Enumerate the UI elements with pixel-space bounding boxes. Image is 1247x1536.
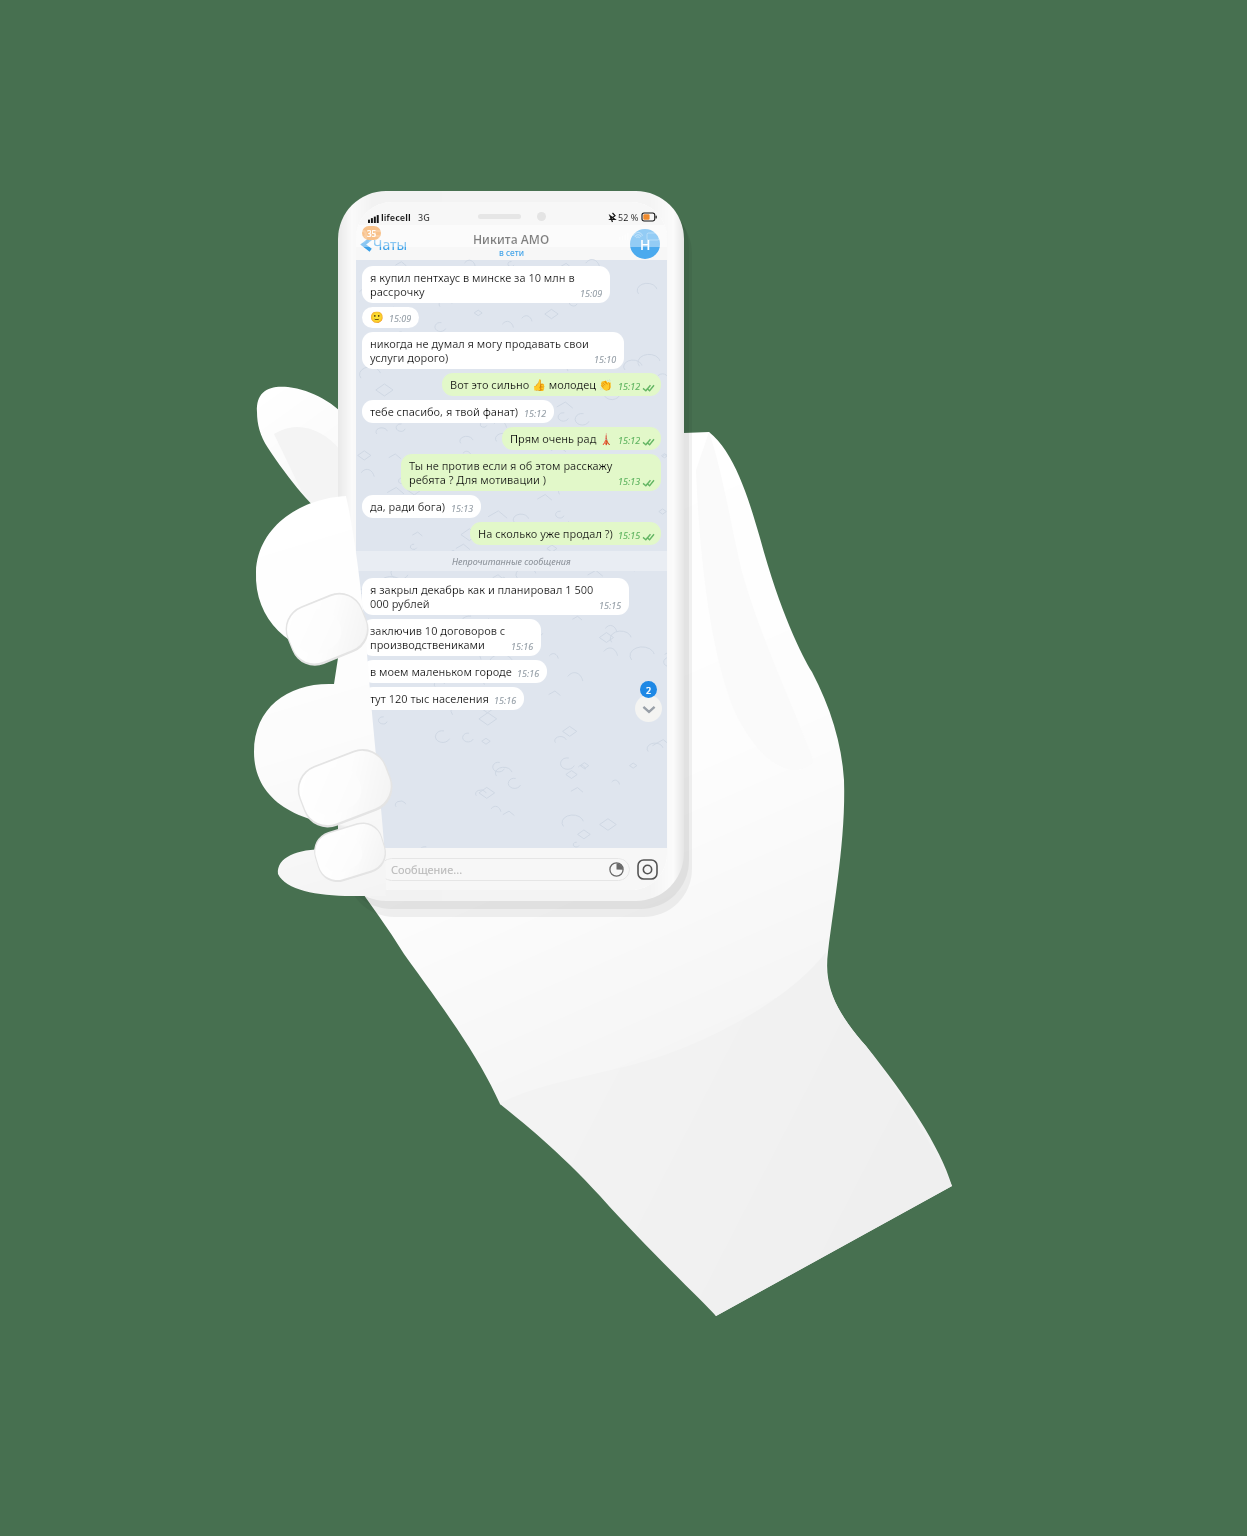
staticText: 15:15 <box>599 599 622 611</box>
staticText: На сколько уже продал ?) <box>478 526 613 541</box>
staticText: заключив 10 договоров с производственика… <box>370 623 506 652</box>
button[interactable]: тебе спасибо, я твой фанат) <box>362 400 554 423</box>
button[interactable]: Вот это сильно 👍 молодец 👏 <box>442 373 661 396</box>
button[interactable]: 🙂 <box>362 307 419 328</box>
staticText: lifecell <box>381 211 411 223</box>
button[interactable]: Сообщение... <box>380 858 630 881</box>
staticText: 15:16 <box>494 694 517 706</box>
button[interactable]: в моем маленьком городе <box>362 660 547 683</box>
button[interactable]: Никита АМО <box>467 230 556 260</box>
staticText: 3G <box>418 211 430 223</box>
staticText: 9:51 <box>358 225 392 247</box>
button[interactable]: я закрыл декабрь как и планировал 1 500 … <box>362 578 629 615</box>
staticText: Вот это сильно 👍 молодец 👏 <box>450 377 613 392</box>
button[interactable]: Ты не против если я об этом расскажу реб… <box>401 454 661 491</box>
staticText: Чаты <box>373 235 408 254</box>
staticText: 15:12 <box>618 434 641 446</box>
staticText: 15:10 <box>594 353 617 365</box>
button[interactable]: заключив 10 договоров с производственика… <box>362 619 541 656</box>
button[interactable]: я купил пентхаус в минске за 10 млн в ра… <box>362 266 610 303</box>
staticText: Прям очень рад 🗼 <box>510 431 613 446</box>
staticText: в сети <box>499 247 524 259</box>
staticText: я закрыл декабрь как и планировал 1 500 … <box>370 582 594 611</box>
staticText: Никита АМО <box>473 231 550 247</box>
button[interactable]: Scroll to bottom <box>635 695 662 722</box>
staticText: Ты не против если я об этом расскажу реб… <box>409 458 613 487</box>
staticText: Н <box>640 235 651 254</box>
staticText: тебе спасибо, я твой фанат) <box>370 404 519 419</box>
staticText: 15:16 <box>511 640 534 652</box>
button[interactable]: никогда не думал я могу продавать свои у… <box>362 332 624 369</box>
button[interactable]: Прям очень рад 🗼 <box>502 427 661 450</box>
staticText: 2 <box>646 684 652 696</box>
staticText: 52 % <box>618 211 639 223</box>
button[interactable]: Чаты <box>361 235 408 254</box>
button[interactable]: тут 120 тыс населения <box>362 687 524 710</box>
staticText: 15:09 <box>580 287 603 299</box>
staticText: 15:13 <box>618 475 641 487</box>
staticText: Непрочитанные сообщения <box>452 555 571 567</box>
staticText: 15:12 <box>524 407 547 419</box>
staticText: 15:15 <box>618 529 641 541</box>
staticText: да, ради бога) <box>370 499 446 514</box>
button[interactable]: да, ради бога) <box>362 495 481 518</box>
staticText: никогда не думал я могу продавать свои у… <box>370 336 589 365</box>
staticText: 15:12 <box>618 380 641 392</box>
button[interactable]: Profile <box>630 229 660 259</box>
staticText: в моем маленьком городе <box>370 664 512 679</box>
staticText: тут 120 тыс населения <box>370 691 489 706</box>
staticText: 🙂 <box>370 311 384 324</box>
staticText: я купил пентхаус в минске за 10 млн в ра… <box>370 270 575 299</box>
staticText: 15:09 <box>389 312 412 324</box>
staticText: Сообщение... <box>391 862 463 877</box>
button[interactable]: Camera <box>638 860 657 879</box>
staticText: 35 <box>367 228 377 239</box>
staticText: 15:13 <box>451 502 474 514</box>
button[interactable]: На сколько уже продал ?) <box>470 522 661 545</box>
button[interactable]: Stickers <box>609 862 624 877</box>
staticText: 15:16 <box>517 667 540 679</box>
